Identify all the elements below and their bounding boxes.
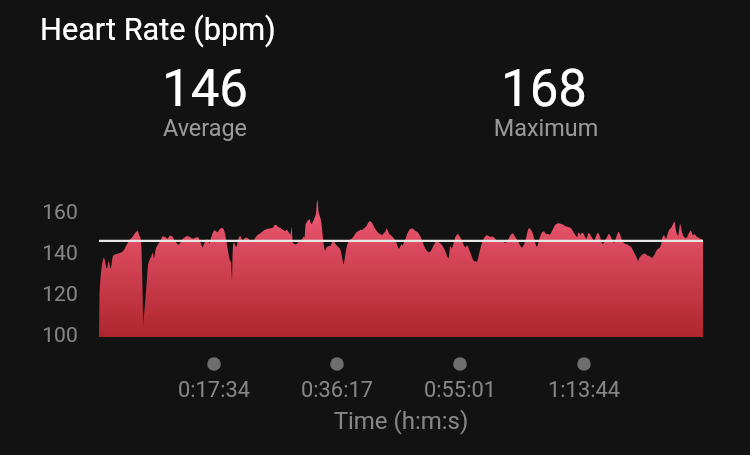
staticText: 168 — [344, 59, 744, 455]
staticText: 140 — [0, 241, 260, 455]
staticText: Average — [5, 114, 405, 455]
staticText: Maximum — [346, 114, 746, 455]
button[interactable]: Heart rate chart — [99, 196, 703, 337]
staticText: 0:36:17 — [137, 377, 537, 455]
staticText: 1:13:44 — [384, 377, 750, 455]
staticText: 120 — [0, 282, 260, 455]
staticText: Heart Rate (bpm) — [40, 12, 276, 48]
button[interactable] — [375, 52, 730, 148]
staticText: Time (h:m:s) — [201, 407, 601, 455]
staticText: 160 — [0, 200, 260, 455]
staticText: 0:55:01 — [260, 377, 660, 455]
staticText: 146 — [5, 59, 405, 455]
staticText: 0:17:34 — [14, 377, 414, 455]
staticText: 100 — [0, 323, 260, 455]
button[interactable] — [20, 52, 375, 148]
